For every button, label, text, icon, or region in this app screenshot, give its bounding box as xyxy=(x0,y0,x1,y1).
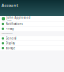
button[interactable]: General xyxy=(0,36,64,41)
button[interactable]: Display xyxy=(0,41,64,46)
staticText: Account xyxy=(2,3,19,8)
button[interactable]: Storage xyxy=(0,46,64,50)
staticText: PREFERENCES xyxy=(2,33,13,34)
staticText: John Appleseed xyxy=(7,16,31,19)
staticText: Apple ID xyxy=(7,20,12,21)
staticText: Storage xyxy=(6,46,16,50)
staticText: Privacy xyxy=(6,27,14,30)
staticText: Notifications xyxy=(6,22,23,26)
button[interactable]: John Appleseed xyxy=(0,16,64,21)
button[interactable]: Notifications xyxy=(0,22,64,26)
staticText: signed in xyxy=(2,16,16,19)
button[interactable]: Privacy xyxy=(0,26,64,31)
staticText: General xyxy=(6,37,17,40)
staticText: Display xyxy=(6,41,15,45)
